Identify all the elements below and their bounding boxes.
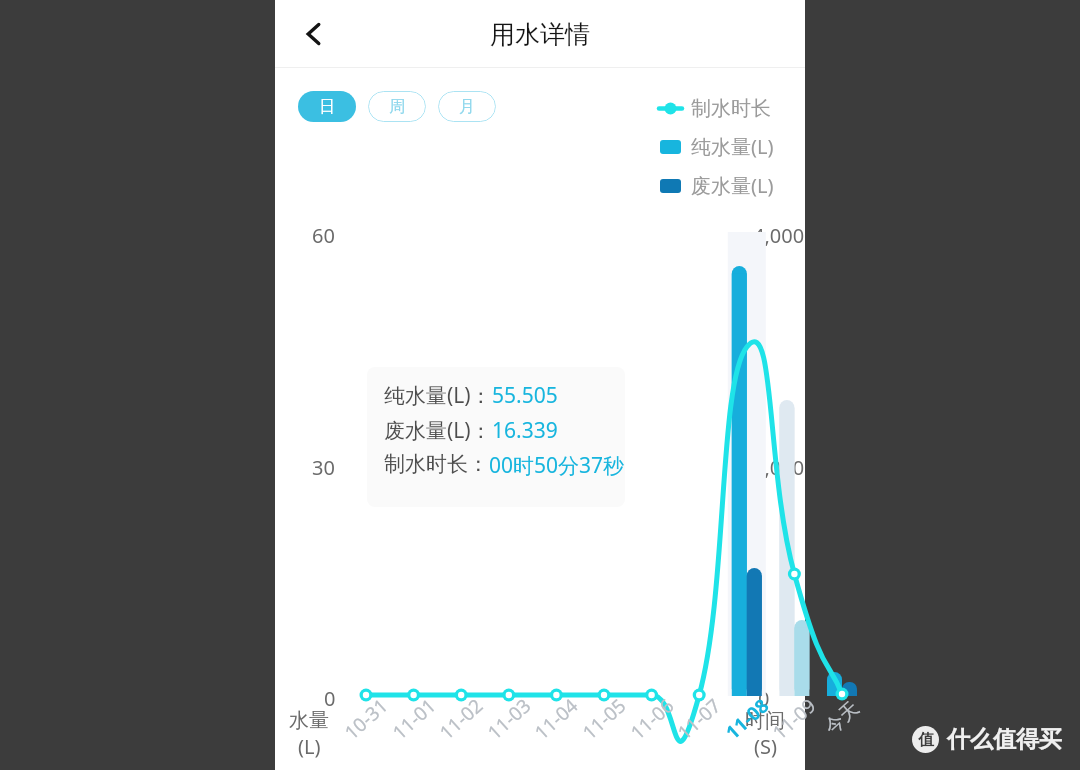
staticText: 水量 [289, 708, 329, 733]
staticText: 55.505 [492, 381, 558, 410]
staticText: 月 [459, 97, 475, 117]
staticText: 00时50分37秒 [489, 451, 625, 480]
staticText: 16.339 [492, 416, 558, 445]
staticText: 11-01 [387, 693, 441, 745]
button[interactable]: 制水时长 [657, 96, 771, 121]
staticText: 11-09 [767, 693, 821, 745]
staticText: 60 [312, 222, 335, 249]
staticText: 周 [389, 97, 405, 117]
staticText: 11-05 [577, 693, 631, 745]
button[interactable]: 周 [368, 91, 426, 122]
staticText: 4,000 [753, 222, 805, 249]
staticText: 纯水量(L) [691, 133, 774, 160]
staticText: 0 [758, 685, 770, 712]
staticText: 11-03 [482, 693, 536, 745]
staticText: 30 [312, 454, 335, 481]
staticText: 2,000 [753, 454, 805, 481]
staticText: 制水时长 [691, 96, 771, 121]
staticText: 11-06 [625, 693, 679, 745]
staticText: (L) [298, 733, 321, 760]
staticText: 纯水量(L)： [384, 381, 492, 410]
staticText: 废水量(L) [691, 172, 774, 199]
button[interactable]: 纯水量(L) [657, 133, 774, 160]
staticText: (S) [754, 733, 777, 760]
staticText: 废水量(L)： [384, 416, 492, 445]
staticText: 制水时长： [384, 451, 489, 477]
staticText: 11-02 [434, 693, 488, 745]
button[interactable]: 月 [438, 91, 496, 122]
staticText: 0 [324, 685, 336, 712]
staticText: 11-08 [720, 693, 774, 745]
staticText: 时间 [745, 708, 785, 733]
staticText: 今天 [820, 696, 864, 740]
button[interactable]: 废水量(L) [657, 172, 774, 199]
staticText: 10-31 [339, 693, 393, 745]
button[interactable]: 日 [298, 91, 356, 122]
staticText: 用水详情 [490, 19, 590, 50]
staticText: 什么值得买 [947, 725, 1062, 754]
staticText: 值 [918, 730, 934, 750]
button[interactable]: Back [283, 0, 345, 68]
staticText: 11-04 [529, 693, 583, 745]
staticText: 日 [319, 97, 335, 117]
staticText: 11-07 [672, 693, 726, 745]
